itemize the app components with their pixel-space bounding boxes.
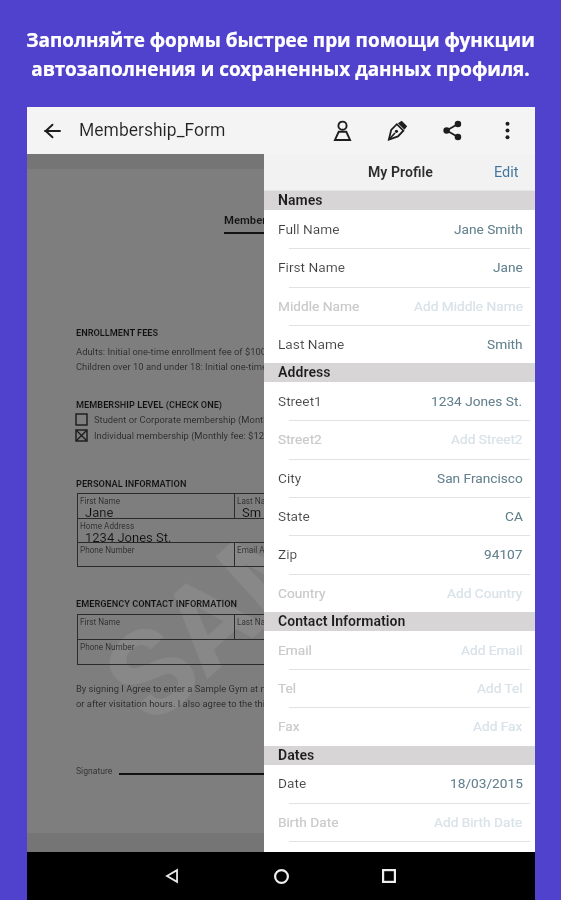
staticText: ENROLLMENT FEES <box>76 327 159 338</box>
staticText: Adults: Initial one-time enrollment fee … <box>76 346 284 357</box>
button[interactable]: Share <box>425 107 480 154</box>
staticText: Add Fax <box>473 718 523 734</box>
staticText: Signature <box>76 766 113 776</box>
button[interactable]: Edit <box>482 154 535 191</box>
staticText: Date <box>278 775 307 791</box>
staticText: Add Street2 <box>451 431 523 447</box>
staticText: City <box>278 470 302 486</box>
button[interactable]: Back <box>33 107 72 154</box>
staticText: San Francisco <box>437 470 523 486</box>
button[interactable]: Sign <box>370 107 425 154</box>
staticText: My Profile <box>368 164 433 181</box>
staticText: Add Birth Date <box>434 814 523 830</box>
staticText: Sm <box>242 505 262 520</box>
staticText: Edit <box>494 164 519 181</box>
staticText: Заполняйте формы быстрее при помощи функ… <box>26 27 535 53</box>
button[interactable]: Full Name <box>264 210 535 248</box>
staticText: Full Name <box>278 221 340 237</box>
staticText: Individual membership (Monthly fee: $125… <box>94 430 273 441</box>
staticText: Street2 <box>278 431 322 447</box>
staticText: Email <box>278 642 312 658</box>
staticText: Middle Name <box>278 298 360 314</box>
staticText: First Name <box>80 496 121 506</box>
staticText: Last Na <box>237 496 266 506</box>
staticText: Jane Smith <box>454 221 523 237</box>
staticText: MEMBERSHIP LEVEL (CHECK ONE) <box>76 399 223 410</box>
staticText: Names <box>278 192 323 209</box>
staticText: 94107 <box>484 546 523 562</box>
staticText: State <box>278 508 310 524</box>
button[interactable]: Profile <box>315 107 370 154</box>
button[interactable]: Tel <box>264 669 535 707</box>
staticText: автозаполнения и сохраненных данных проф… <box>31 56 530 82</box>
button[interactable]: Fax <box>264 707 535 745</box>
staticText: Country <box>278 585 326 601</box>
button[interactable]: Street1 <box>264 382 535 420</box>
staticText: Tel <box>278 680 297 696</box>
staticText: Birth Date <box>278 814 339 830</box>
staticText: EMERGENCY CONTACT INFORMATION <box>76 598 238 609</box>
staticText: or after visitation hours. I also agree … <box>76 698 287 709</box>
staticText: Address <box>278 364 331 381</box>
staticText: Add Tel <box>477 680 523 696</box>
staticText: Email A <box>237 545 265 555</box>
button[interactable]: Country <box>264 574 535 612</box>
staticText: Phone Number <box>80 545 135 555</box>
staticText: Fax <box>278 718 300 734</box>
staticText: Add Middle Name <box>414 298 523 314</box>
staticText: Jane <box>493 259 523 275</box>
staticText: Membership Form <box>224 214 318 227</box>
button[interactable]: Recents <box>362 852 416 900</box>
staticText: Last Na <box>237 617 266 627</box>
staticText: By signing I Agree to enter a Sample Gym… <box>76 683 281 694</box>
staticText: SAMPLE <box>78 331 522 751</box>
staticText: PERSONAL INFORMATION <box>76 478 187 489</box>
button[interactable]: Zip <box>264 535 535 573</box>
staticText: First Name <box>80 617 121 627</box>
button[interactable]: Street2 <box>264 420 535 458</box>
staticText: Student or Corporate membership (Monthly… <box>94 414 286 425</box>
staticText: 18/03/2015 <box>450 775 523 791</box>
button[interactable]: Birth Date <box>264 803 535 841</box>
staticText: Smith <box>487 336 523 352</box>
button[interactable]: More options <box>480 107 535 154</box>
staticText: Street1 <box>278 393 322 409</box>
staticText: Contact Information <box>278 613 406 630</box>
button[interactable]: Home <box>254 852 308 900</box>
staticText: Children over 10 and under 18: Initial o… <box>76 361 283 372</box>
staticText: Phone Number <box>80 642 135 652</box>
staticText: Add Country <box>447 585 523 601</box>
staticText: 1234 Jones St. <box>431 393 523 409</box>
button[interactable]: Email <box>264 631 535 669</box>
staticText: Zip <box>278 546 298 562</box>
button[interactable]: First Name <box>264 248 535 286</box>
button[interactable]: Middle Name <box>264 287 535 325</box>
button[interactable]: City <box>264 459 535 497</box>
button[interactable]: Date <box>264 764 535 802</box>
staticText: 1234 Jones St. <box>85 530 172 544</box>
staticText: Add Email <box>461 642 523 658</box>
button[interactable]: Last Name <box>264 325 535 363</box>
staticText: Membership_Form <box>79 120 226 141</box>
staticText: Last Name <box>278 336 345 352</box>
staticText: Dates <box>278 747 315 764</box>
staticText: CA <box>505 508 523 524</box>
staticText: Home Address <box>80 521 135 531</box>
button[interactable]: State <box>264 497 535 535</box>
staticText: First Name <box>278 259 345 275</box>
button[interactable]: Back <box>145 852 199 900</box>
staticText: Jane <box>85 505 114 520</box>
